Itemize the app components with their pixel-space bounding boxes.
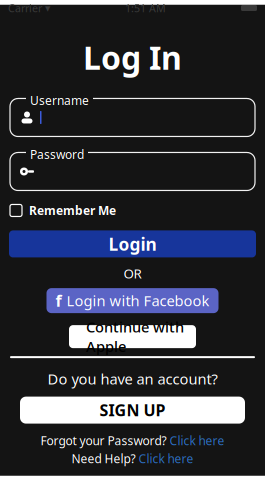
staticText: Remember Me [29, 202, 116, 218]
staticText: SIGN UP [99, 399, 165, 421]
button[interactable]: Login [9, 230, 256, 257]
button[interactable]: SIGN UP [20, 397, 245, 424]
staticText: Need Help? [71, 450, 135, 466]
button[interactable] [69, 325, 196, 348]
staticText: Do you have an account? [47, 369, 217, 389]
staticText: Click here [169, 433, 224, 448]
button[interactable]: f [46, 288, 218, 313]
staticText: ▾ [45, 2, 50, 14]
staticText: Forgot your Password? [40, 433, 166, 448]
button[interactable]: Need Help? [71, 450, 193, 466]
staticText: OR [123, 264, 141, 282]
staticText: Login [108, 232, 156, 255]
staticText: Click here [138, 450, 193, 466]
button[interactable]: Remember Me [0, 190, 265, 222]
staticText: Carrier [8, 1, 42, 15]
staticText: Log In [83, 36, 182, 78]
button[interactable]: Forgot your Password? [40, 433, 224, 448]
staticText: f [55, 290, 61, 311]
staticText: Username [30, 92, 89, 108]
staticText: 1:51 AM [125, 1, 166, 15]
staticText: Continue with Apple [86, 317, 184, 356]
staticText: Password [30, 146, 84, 162]
staticText: Login with Facebook [66, 291, 209, 310]
